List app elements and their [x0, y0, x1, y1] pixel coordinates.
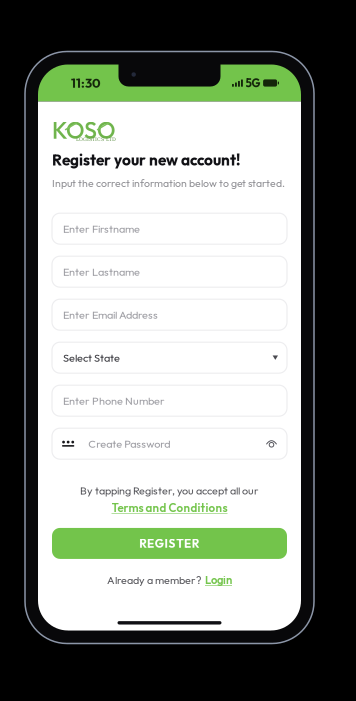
button[interactable]: Enter Phone Number	[52, 385, 287, 416]
staticText: Register your new account!	[52, 150, 240, 169]
button[interactable]: Enter Lastname	[52, 256, 287, 287]
staticText: Create Password	[88, 437, 170, 451]
staticText: 5G	[245, 76, 260, 90]
staticText: Enter Firstname	[63, 222, 140, 236]
staticText: Input the correct information below to g…	[52, 176, 285, 190]
staticText: 11:30	[71, 75, 101, 91]
staticText: Enter Lastname	[63, 265, 140, 279]
staticText: Already a member?	[107, 573, 201, 587]
staticText: KOSO	[52, 115, 116, 145]
button[interactable]: Login	[205, 573, 232, 587]
button[interactable]: Terms and Conditions	[111, 500, 227, 515]
staticText: LOGISTICS LTD	[76, 136, 116, 142]
button[interactable]: Enter Email Address	[52, 299, 287, 330]
staticText: Enter Phone Number	[63, 394, 165, 408]
staticText: Login	[205, 573, 232, 587]
staticText: Enter Email Address	[63, 308, 158, 322]
button[interactable]: REGISTER	[52, 528, 287, 559]
staticText: Select State	[63, 351, 120, 365]
staticText: By tapping Register, you accept all our	[80, 484, 259, 497]
button[interactable]: Select State	[52, 342, 287, 373]
staticText: Terms and Conditions	[111, 500, 227, 515]
staticText: REGISTER	[139, 536, 200, 551]
button[interactable]: Create Password	[52, 428, 287, 459]
button[interactable]: Enter Firstname	[52, 213, 287, 244]
